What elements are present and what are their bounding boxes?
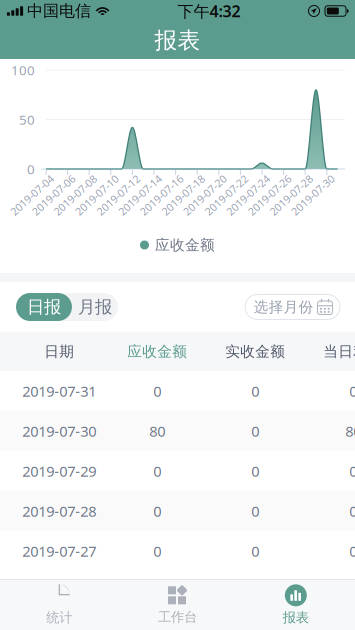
staticText: 100	[11, 61, 35, 79]
staticText: 0	[153, 541, 161, 561]
button[interactable]: 工作台	[118, 580, 237, 630]
button[interactable]: 2019-07-31	[0, 371, 355, 411]
staticText: 0	[349, 381, 355, 401]
staticText: 2019-07-28	[22, 501, 96, 521]
staticText: 2019-07-12	[91, 188, 145, 202]
staticText: 2019-07-04	[5, 188, 59, 202]
staticText: 日期	[44, 342, 74, 360]
button[interactable]: 2019-07-28	[0, 491, 355, 531]
staticText: 80	[345, 421, 355, 441]
staticText: 2019-07-22	[199, 188, 253, 202]
staticText: 统计	[46, 609, 72, 626]
staticText: 2019-07-20	[178, 188, 232, 202]
staticText: 0	[153, 461, 161, 481]
staticText: 0	[349, 541, 355, 561]
button[interactable]: 2019-07-30	[0, 411, 355, 451]
staticText: 0	[27, 160, 35, 178]
button[interactable]: 月报	[72, 293, 118, 321]
staticText: 2019-07-08	[48, 188, 102, 202]
staticText: 2019-07-27	[22, 541, 96, 561]
staticText: 实收金额	[225, 342, 285, 360]
button[interactable]: 日报	[16, 293, 72, 321]
staticText: 中国电信	[27, 1, 91, 21]
staticText: 报表	[283, 609, 309, 626]
staticText: 0	[349, 461, 355, 481]
staticText: 当日利润	[323, 342, 355, 360]
staticText: 下午4:32	[177, 0, 240, 22]
staticText: 日报	[27, 296, 61, 318]
staticText: 0	[251, 541, 259, 561]
staticText: 0	[153, 501, 161, 521]
staticText: 0	[153, 381, 161, 401]
staticText: 50	[19, 111, 35, 128]
staticText: 2019-07-24	[221, 188, 275, 202]
staticText: 2019-07-28	[264, 188, 318, 202]
staticText: 应收金额	[155, 236, 215, 254]
staticText: 2019-07-30	[22, 421, 96, 441]
staticText: 2019-07-29	[22, 461, 96, 481]
button[interactable]: 2019-07-29	[0, 451, 355, 491]
staticText: 0	[251, 421, 259, 441]
staticText: 月报	[78, 296, 112, 318]
staticText: 2019-07-06	[27, 188, 81, 202]
button[interactable]: 统计	[0, 580, 118, 630]
staticText: 2019-07-10	[70, 188, 124, 202]
staticText: 选择月份	[253, 298, 313, 316]
staticText: 0	[251, 461, 259, 481]
staticText: 2019-07-31	[22, 381, 96, 401]
staticText: 2019-07-16	[135, 188, 189, 202]
staticText: 2019-07-26	[243, 188, 297, 202]
staticText: 应收金额	[127, 342, 187, 360]
staticText: 2019-07-30	[286, 188, 340, 202]
staticText: 80	[149, 421, 165, 441]
staticText: 0	[251, 381, 259, 401]
staticText: 0	[349, 501, 355, 521]
staticText: 工作台	[158, 609, 197, 625]
button[interactable]: 2019-07-27	[0, 531, 355, 571]
button[interactable]: 选择月份	[245, 294, 340, 319]
staticText: 2019-07-14	[113, 188, 167, 202]
staticText: 0	[251, 501, 259, 521]
staticText: 报表	[154, 27, 200, 54]
button[interactable]: 报表	[237, 580, 355, 630]
staticText: 2019-07-18	[156, 188, 210, 202]
